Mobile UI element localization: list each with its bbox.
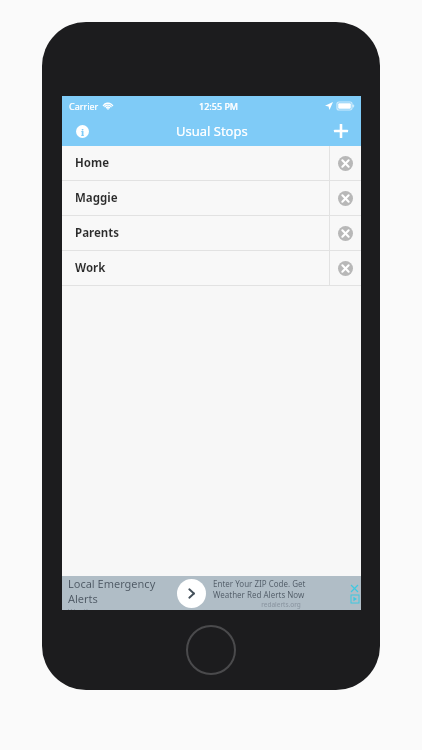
button[interactable]: Work: [62, 251, 361, 285]
staticText: redalerts.org: [213, 600, 349, 609]
staticText: Maggie: [75, 190, 118, 206]
button[interactable]: Info: [71, 120, 93, 142]
button[interactable]: Add stop: [329, 119, 353, 143]
staticText: i: [81, 126, 85, 138]
button[interactable]: Parents: [62, 216, 361, 250]
staticText: Local Emergency Alerts: [68, 576, 177, 606]
staticText: Work: [75, 260, 106, 276]
button[interactable]: Local Emergency Alerts: [62, 576, 361, 610]
button[interactable]: Maggie: [62, 181, 361, 215]
staticText: Usual Stops: [176, 122, 248, 140]
button[interactable]: Home: [186, 625, 236, 675]
button[interactable]: Home: [62, 146, 361, 180]
button[interactable]: Close ad: [350, 584, 359, 593]
staticText: Enter Your ZIP Code. Get: [213, 578, 306, 589]
button[interactable]: Delete Parents: [330, 216, 361, 250]
staticText: Weather: [68, 606, 98, 610]
staticText: Carrier: [69, 100, 99, 112]
button[interactable]: Delete Work: [330, 251, 361, 285]
staticText: Parents: [75, 225, 120, 241]
button[interactable]: Delete Home: [330, 146, 361, 180]
staticText: Weather Red Alerts Now: [213, 589, 305, 600]
staticText: Home: [75, 155, 110, 171]
staticText: 12:55 PM: [199, 100, 239, 112]
button[interactable]: Ad choices: [350, 594, 359, 603]
button[interactable]: Delete Maggie: [330, 181, 361, 215]
